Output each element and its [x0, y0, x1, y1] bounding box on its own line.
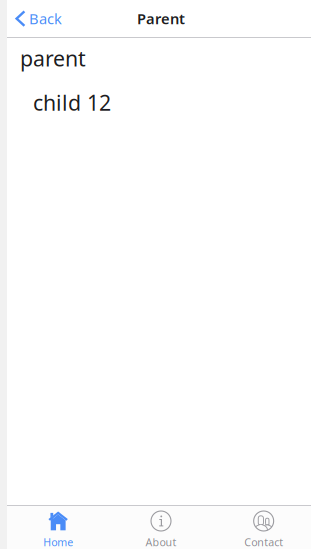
- button[interactable]: Back: [7, 9, 70, 28]
- staticText: parent: [20, 44, 86, 72]
- staticText: About: [145, 535, 176, 549]
- button[interactable]: Home: [7, 506, 110, 549]
- staticText: Home: [43, 535, 73, 549]
- staticText: Back: [29, 9, 62, 28]
- button[interactable]: About: [110, 506, 212, 549]
- staticText: Parent: [137, 9, 185, 28]
- button[interactable]: Contact: [212, 506, 311, 549]
- staticText: Contact: [244, 535, 283, 549]
- staticText: child 12: [33, 88, 111, 117]
